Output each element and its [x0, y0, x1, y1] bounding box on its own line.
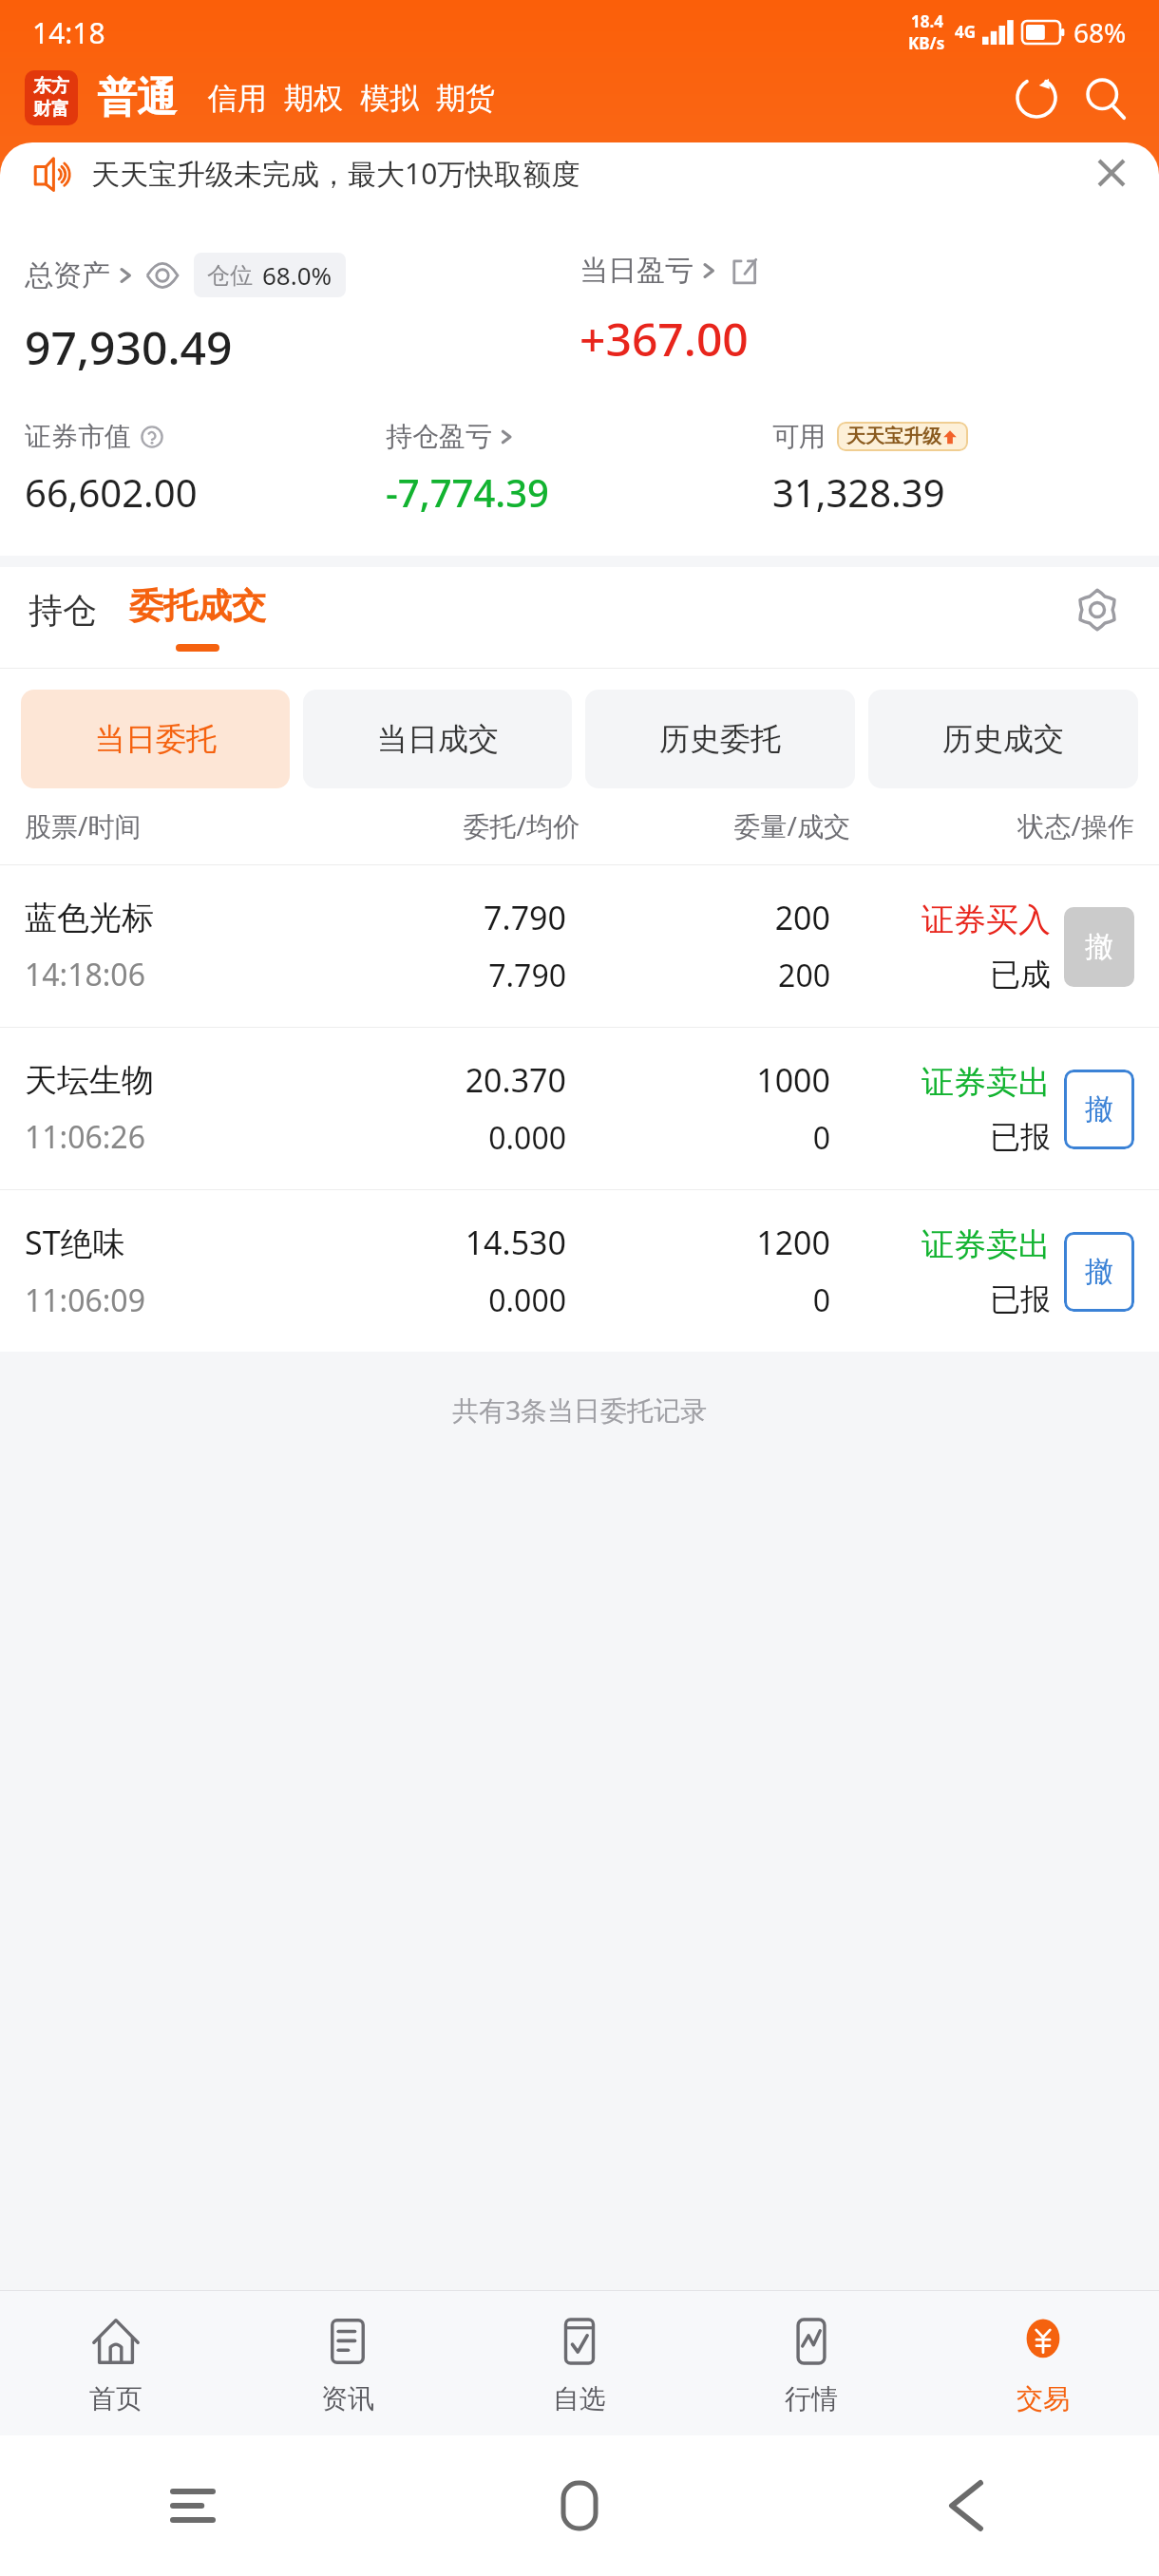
staticText: 1200 [756, 1221, 830, 1264]
staticText: 证券卖出 [921, 1062, 1051, 1103]
staticText: 11:06:09 [25, 1279, 145, 1321]
staticText: +367.00 [579, 308, 749, 369]
button[interactable]: 撤 [1064, 907, 1134, 987]
button[interactable]: 期货 [427, 80, 503, 117]
staticText: 1000 [756, 1058, 830, 1102]
staticText: 证券市值 [25, 420, 131, 453]
staticText: 东方 [33, 75, 69, 98]
button[interactable]: 天天宝升级未完成，最大10万快取额度 [0, 142, 1159, 230]
button[interactable]: 证券市值 [25, 420, 163, 453]
staticText: 200 [774, 896, 830, 939]
staticText: 期权 [284, 80, 343, 117]
staticText: 31,328.39 [772, 466, 945, 518]
staticText: 天坛生物 [25, 1060, 154, 1101]
button[interactable]: 交易 [927, 2291, 1159, 2435]
staticText: 7.790 [488, 955, 566, 996]
button[interactable]: Home [546, 2472, 613, 2539]
button[interactable]: Settings [1064, 577, 1130, 643]
staticText: 证券买入 [921, 900, 1051, 940]
button[interactable]: 委托成交 [129, 584, 266, 652]
staticText: 4G [955, 21, 977, 43]
staticText: 模拟 [360, 80, 419, 117]
staticText: 蓝色光标 [25, 898, 154, 938]
button[interactable]: 资讯 [232, 2291, 464, 2435]
button[interactable]: 自选 [464, 2291, 695, 2435]
staticText: 委托成交 [129, 584, 266, 627]
staticText: 已报 [990, 1280, 1051, 1318]
staticText: 自选 [553, 2382, 606, 2415]
staticText: 普通 [97, 73, 177, 123]
button[interactable]: 撤 [1064, 1232, 1134, 1312]
staticText: 0 [812, 1279, 830, 1321]
staticText: 11:06:26 [25, 1116, 145, 1158]
staticText: 当日委托 [95, 720, 217, 758]
staticText: 信用 [208, 80, 267, 117]
button[interactable]: Refresh [1007, 68, 1066, 127]
staticText: 股票/时间 [25, 807, 309, 843]
staticText: 历史成交 [942, 720, 1064, 758]
staticText: 行情 [785, 2382, 838, 2415]
staticText: 状态/操作 [850, 807, 1134, 843]
staticText: 财富 [33, 98, 69, 121]
staticText: 已报 [990, 1118, 1051, 1156]
staticText: 历史委托 [659, 720, 781, 758]
staticText: ST绝味 [25, 1221, 125, 1264]
staticText: 97,930.49 [25, 316, 233, 378]
button[interactable]: 普通 [95, 73, 179, 123]
button[interactable]: 当日委托 [21, 690, 290, 788]
staticText: 撤 [1085, 929, 1113, 965]
button[interactable]: 东方财富 [25, 70, 78, 125]
staticText: 共有3条当日委托记录 [452, 1392, 708, 1428]
staticText: 天天宝升级未完成，最大10万快取额度 [91, 154, 580, 193]
staticText: 委量/成交 [579, 807, 850, 843]
button[interactable]: 期权 [275, 80, 351, 117]
button[interactable]: Back [933, 2472, 999, 2539]
staticText: 18.4 [911, 10, 943, 32]
staticText: 14:18 [32, 13, 105, 52]
button[interactable]: 当日成交 [303, 690, 572, 788]
staticText: 委托/均价 [309, 807, 579, 843]
button[interactable]: 天坛生物 [0, 1028, 1159, 1189]
staticText: 已成 [990, 956, 1051, 994]
staticText: 7.790 [484, 896, 566, 939]
button[interactable]: 模拟 [351, 80, 427, 117]
staticText: 可用 [772, 420, 826, 453]
staticText: 20.370 [465, 1058, 566, 1102]
staticText: 总资产 [25, 257, 110, 294]
button[interactable]: Close [1091, 152, 1132, 194]
staticText: 0.000 [488, 1279, 566, 1321]
staticText: 持仓盈亏 [386, 420, 492, 453]
button[interactable]: 行情 [695, 2291, 927, 2435]
staticText: 14.530 [465, 1221, 566, 1264]
staticText: 撤 [1085, 1091, 1113, 1127]
staticText: 持仓 [28, 589, 97, 632]
staticText: 天天宝升级 [846, 425, 941, 448]
staticText: 撤 [1085, 1254, 1113, 1290]
staticText: 0.000 [488, 1117, 566, 1159]
button[interactable]: Recents [160, 2472, 226, 2539]
staticText: 首页 [89, 2382, 142, 2415]
button[interactable]: 历史成交 [868, 690, 1138, 788]
staticText: 14:18:06 [25, 954, 145, 995]
button[interactable]: 当日盈亏 [579, 253, 758, 289]
button[interactable]: 撤 [1064, 1070, 1134, 1149]
button[interactable]: 总资产 [25, 253, 346, 297]
button[interactable]: 持仓盈亏 [386, 420, 515, 453]
staticText: 仓位 [207, 261, 253, 290]
staticText: 66,602.00 [25, 466, 198, 518]
button[interactable]: 持仓 [25, 597, 101, 639]
button[interactable]: 信用 [199, 80, 275, 117]
staticText: 证券卖出 [921, 1224, 1051, 1265]
button[interactable]: 历史委托 [585, 690, 855, 788]
staticText: 68% [1073, 14, 1127, 50]
button[interactable]: Search [1075, 68, 1134, 127]
button[interactable]: 首页 [0, 2291, 232, 2435]
staticText: 0 [812, 1117, 830, 1159]
button[interactable]: ST绝味 [0, 1190, 1159, 1352]
button[interactable]: 蓝色光标 [0, 865, 1159, 1027]
staticText: 资讯 [321, 2382, 374, 2415]
button[interactable]: 可用 [772, 420, 968, 453]
staticText: 当日成交 [377, 720, 499, 758]
staticText: 当日盈亏 [579, 253, 693, 289]
staticText: KB/s [908, 32, 945, 54]
